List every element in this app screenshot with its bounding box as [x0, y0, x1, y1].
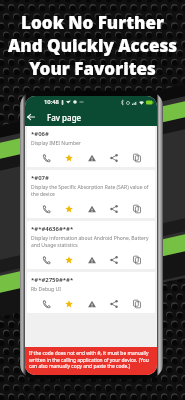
staticText: 10:48: [44, 98, 59, 106]
button[interactable]: Favorite: [60, 202, 78, 216]
button[interactable]: Warning: [83, 253, 101, 267]
staticText: And Quickly Access: [0, 34, 185, 57]
button[interactable]: Share: [105, 151, 123, 165]
staticText: *#*#2759#*#*: [31, 276, 74, 284]
staticText: *#*#4636#*#*: [31, 225, 74, 233]
button[interactable]: Copy: [128, 253, 146, 267]
button[interactable]: Call: [37, 202, 55, 216]
button[interactable]: Warning: [83, 202, 101, 216]
button[interactable]: Warning: [83, 151, 101, 165]
button[interactable]: Back: [25, 108, 36, 126]
button[interactable]: *#07#: [27, 170, 155, 218]
button[interactable]: Copy: [128, 202, 146, 216]
staticText: Display the Specific Absorption Rate (SA…: [31, 184, 151, 198]
button[interactable]: Favorite: [60, 297, 78, 311]
staticText: If the code does not end with #, it must…: [29, 350, 153, 369]
button[interactable]: Share: [105, 297, 123, 311]
staticText: *#07#: [31, 174, 49, 182]
staticText: Fav page: [47, 112, 82, 123]
button[interactable]: *#06#: [27, 126, 155, 167]
button[interactable]: Favorite: [60, 151, 78, 165]
staticText: Display information about Android Phone,…: [31, 235, 151, 249]
button[interactable]: Call: [37, 253, 55, 267]
staticText: Display IMEI Number: [31, 140, 81, 147]
staticText: Your Favorites: [0, 57, 185, 80]
button[interactable]: Copy: [128, 151, 146, 165]
button[interactable]: *#*#2759#*#*: [27, 272, 155, 313]
staticText: Look No Further: [0, 11, 185, 34]
button[interactable]: Favorite: [60, 253, 78, 267]
button[interactable]: Share: [105, 202, 123, 216]
button[interactable]: Share: [105, 253, 123, 267]
staticText: Rb Debug UI: [31, 286, 61, 293]
button[interactable]: *#*#4636#*#*: [27, 221, 155, 269]
button[interactable]: Call: [37, 151, 55, 165]
button[interactable]: Warning: [83, 297, 101, 311]
button[interactable]: Call: [37, 297, 55, 311]
button[interactable]: Copy: [128, 297, 146, 311]
staticText: *#06#: [31, 130, 49, 138]
